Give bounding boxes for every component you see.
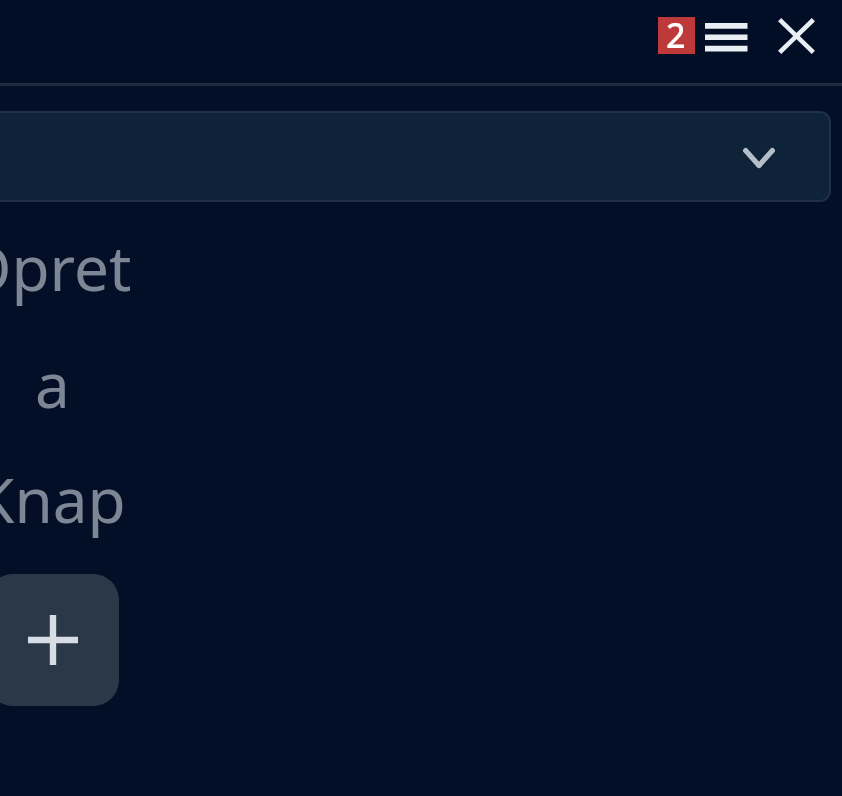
button[interactable]: 2 [658, 17, 695, 54]
button[interactable]: Add [0, 574, 119, 706]
staticText: a [35, 342, 70, 426]
staticText: Knap [0, 457, 126, 541]
staticText: 2 [666, 12, 686, 49]
button[interactable]: Menu [697, 14, 756, 68]
button[interactable]: Select option [0, 111, 831, 202]
staticText: Opret [0, 225, 132, 309]
button[interactable]: Close [771, 11, 822, 62]
